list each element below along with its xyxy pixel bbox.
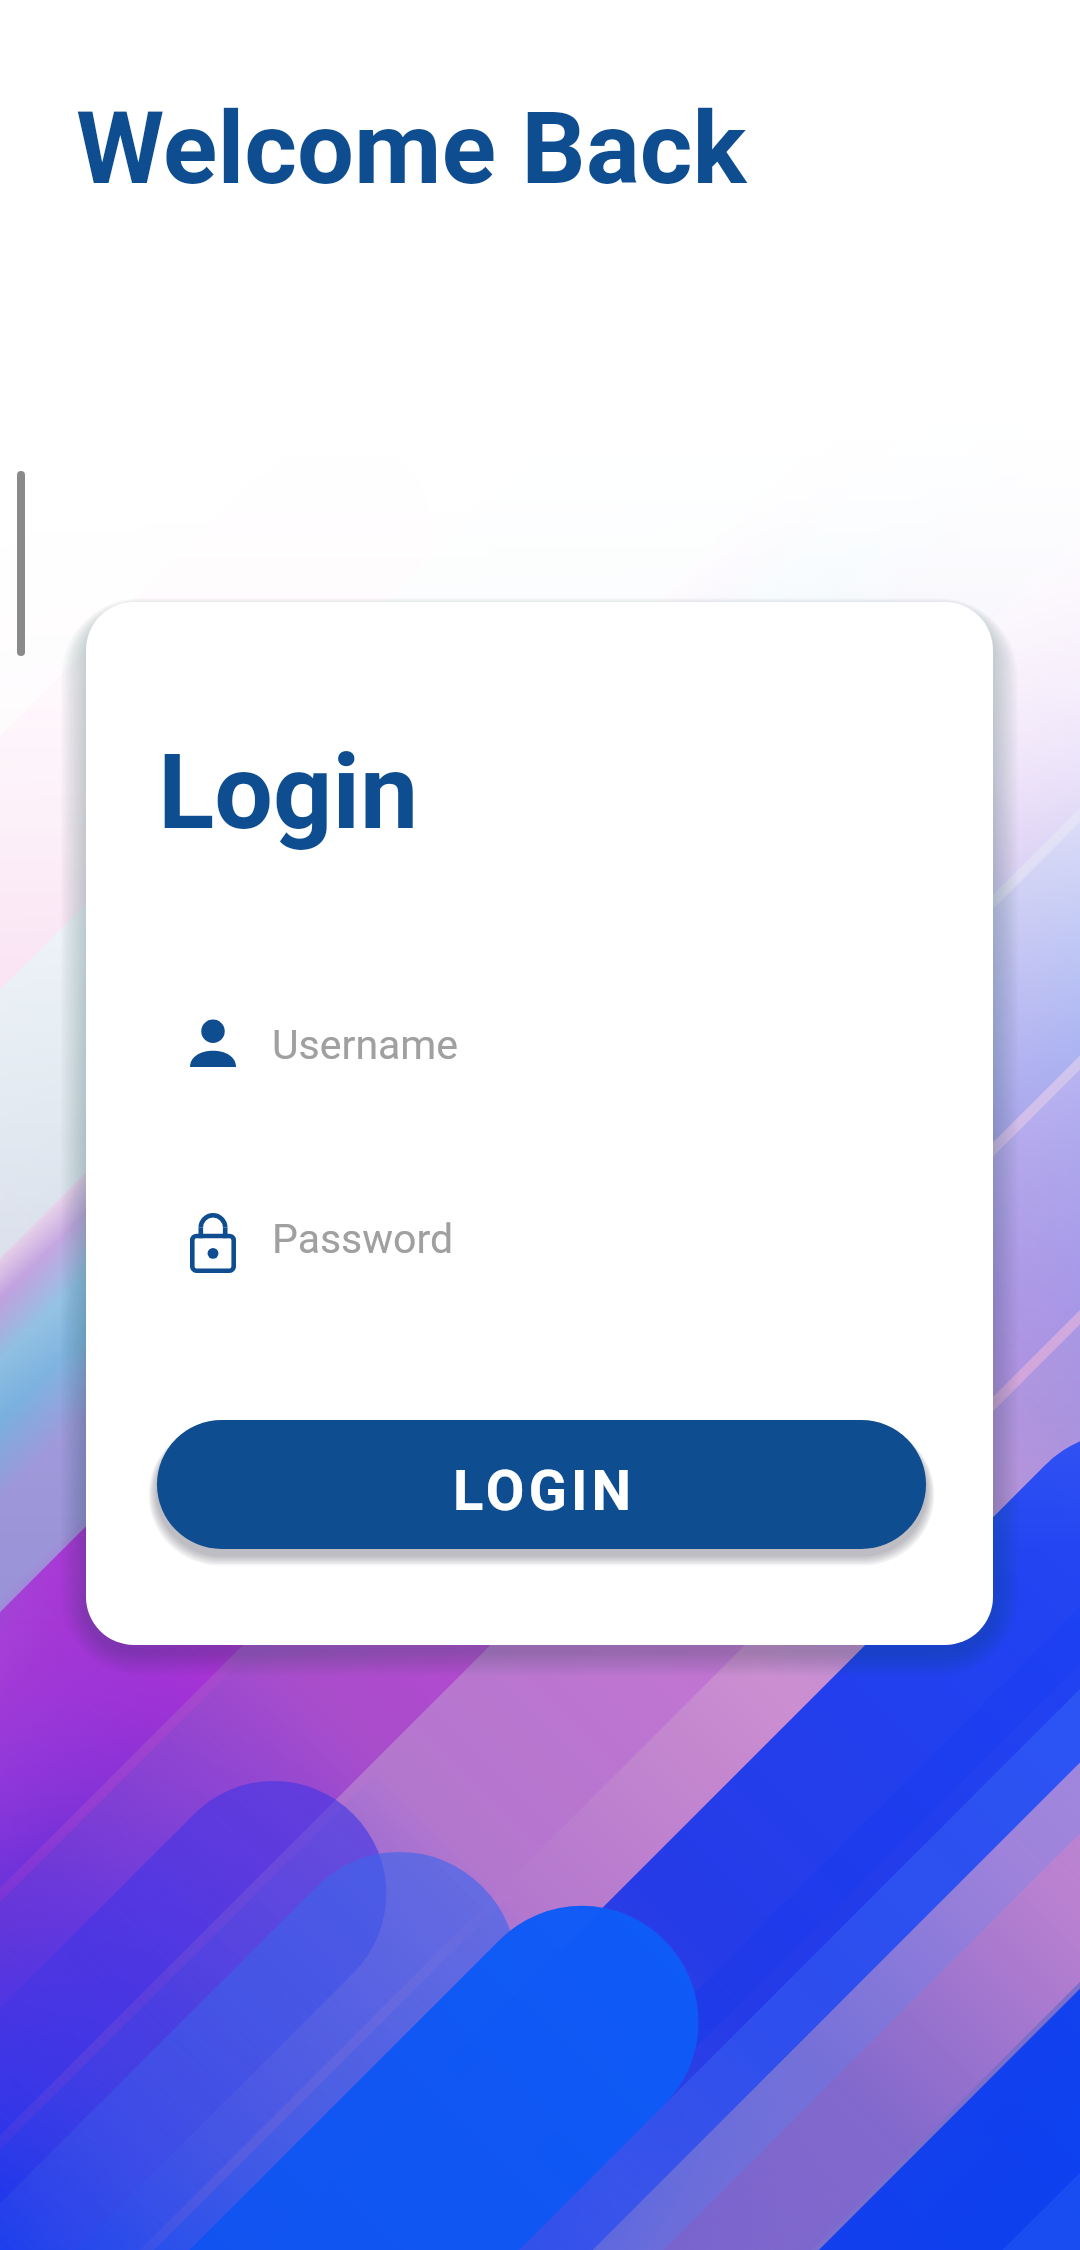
staticText: Username [272, 1021, 459, 1069]
staticText: Login [158, 732, 419, 854]
button[interactable]: Username [190, 1019, 840, 1067]
staticText: Password [272, 1215, 454, 1263]
button[interactable]: Password [190, 1213, 840, 1273]
staticText: LOGIN [453, 1458, 636, 1524]
staticText: Welcome Back [76, 89, 747, 207]
button[interactable]: LOGIN [157, 1420, 926, 1549]
